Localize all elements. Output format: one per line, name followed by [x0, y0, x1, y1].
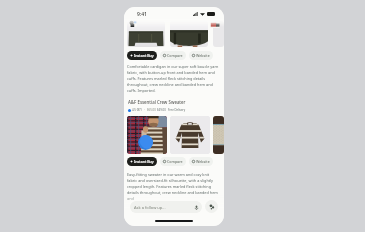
- staticText: Comfortable cardigan in our super soft b…: [127, 64, 219, 93]
- staticText: ·: [144, 108, 145, 112]
- button[interactable]: Gemini assistant: [205, 200, 218, 213]
- button[interactable]: Website: [189, 157, 213, 166]
- staticText: A&F Essential Crew Sweater: [128, 99, 186, 105]
- staticText: $49.00: [157, 108, 166, 112]
- button[interactable]: Instant Buy: [127, 51, 157, 60]
- button[interactable]: Compare: [160, 51, 186, 60]
- staticText: 9:41: [137, 11, 147, 18]
- button[interactable]: Compare: [160, 157, 186, 166]
- button[interactable]: Instant Buy: [127, 157, 157, 166]
- staticText: Instant Buy: [134, 159, 154, 164]
- staticText: Easy-fitting sweater in our warm and coz…: [127, 172, 219, 201]
- staticText: Compare: [167, 53, 183, 58]
- staticText: 4.5 (87): [132, 108, 142, 112]
- staticText: Ask a follow up...: [134, 205, 193, 210]
- button[interactable]: Ask a follow up...: [130, 201, 202, 213]
- staticText: Free Delivery: [168, 108, 186, 112]
- staticText: Website: [196, 53, 210, 58]
- staticText: $65.00: [147, 108, 156, 112]
- staticText: Instant Buy: [134, 53, 154, 58]
- staticText: Compare: [167, 159, 183, 164]
- button[interactable]: Voice input: [193, 204, 199, 210]
- button[interactable]: Website: [189, 51, 213, 60]
- staticText: Website: [196, 159, 210, 164]
